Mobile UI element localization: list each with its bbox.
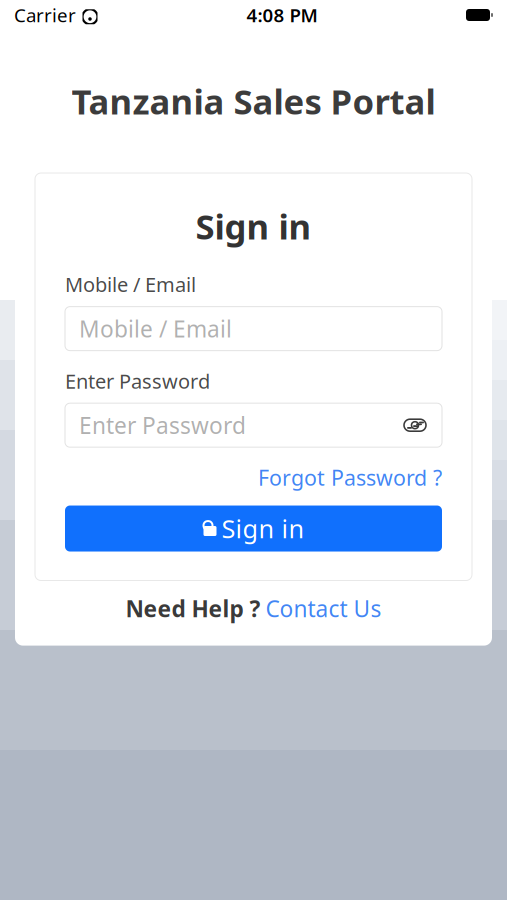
staticText: Enter Password xyxy=(65,368,210,394)
button[interactable]: Sign in xyxy=(65,505,442,551)
staticText: 4:08 PM xyxy=(246,3,317,27)
staticText: Carrier xyxy=(14,3,76,27)
staticText: Mobile / Email xyxy=(65,271,196,298)
staticText: Enter Password xyxy=(79,410,246,440)
button[interactable]: Show password xyxy=(402,412,428,438)
staticText: Mobile / Email xyxy=(79,314,232,344)
staticText: Contact Us xyxy=(265,593,381,624)
staticText: Forgot Password ? xyxy=(258,463,442,491)
staticText: Sign in xyxy=(221,512,304,545)
staticText: Sign in xyxy=(195,203,311,249)
button[interactable]: Contact Us xyxy=(265,593,381,624)
staticText: Need Help ? xyxy=(125,593,260,624)
button[interactable]: Forgot Password ? xyxy=(258,463,442,491)
staticText: Tanzania Sales Portal xyxy=(71,78,435,124)
